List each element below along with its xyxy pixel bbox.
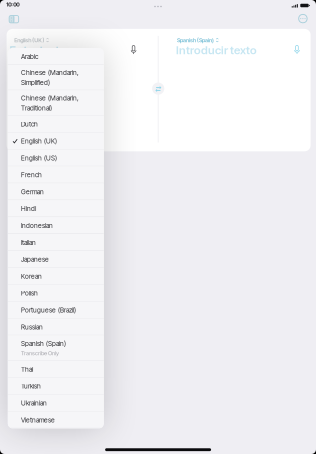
staticText: Polish [21, 289, 38, 297]
staticText: Portuguese (Brazil) [21, 306, 76, 314]
button[interactable]: Vietnamese [8, 411, 104, 428]
staticText: Ukrainian [21, 399, 47, 407]
staticText: 10:00 [6, 1, 19, 8]
staticText: Korean [21, 272, 42, 280]
button[interactable]: Japanese [8, 251, 104, 268]
button[interactable]: German [8, 183, 104, 200]
button[interactable]: Russian [8, 318, 104, 335]
button[interactable]: Spanish (Spain) [8, 335, 104, 361]
staticText: Traditional) [21, 104, 52, 112]
staticText: German [21, 188, 44, 196]
button[interactable]: Thai [8, 361, 104, 378]
staticText: Arabic [21, 52, 38, 60]
staticText: Simplified) [21, 79, 50, 87]
staticText: Spanish (Spain) [21, 340, 66, 348]
button[interactable]: Korean [8, 268, 104, 285]
staticText: Chinese (Mandarin, [21, 94, 79, 102]
staticText: Enter text [10, 43, 60, 57]
staticText: Japanese [21, 255, 49, 263]
button[interactable]: Turkish [8, 378, 104, 395]
button[interactable]: Polish [8, 285, 104, 302]
button[interactable]: French [8, 166, 104, 183]
button[interactable]: Hindi [8, 200, 104, 217]
staticText: Introducir texto [176, 43, 257, 57]
staticText: Turkish [21, 382, 41, 390]
staticText: Thai [21, 365, 33, 373]
staticText: Hindi [21, 205, 36, 213]
button[interactable]: More options [296, 12, 310, 26]
button[interactable]: Chinese (Mandarin, [8, 65, 104, 90]
staticText: Russian [21, 323, 43, 331]
button[interactable]: Chinese (Mandarin, [8, 90, 104, 116]
button[interactable]: Indonesian [8, 217, 104, 234]
button[interactable]: Portuguese (Brazil) [8, 302, 104, 318]
button[interactable]: Dutch [8, 116, 104, 133]
staticText: English (US) [21, 154, 57, 162]
staticText: Italian [21, 238, 36, 246]
staticText: Chinese (Mandarin, [21, 69, 79, 77]
button[interactable]: English (US) [8, 149, 104, 166]
button[interactable]: Italian [8, 234, 104, 251]
button[interactable]: Show sidebar [7, 13, 21, 26]
button[interactable]: English (UK) [8, 133, 104, 149]
staticText: Dutch [21, 120, 38, 128]
button[interactable]: Arabic [8, 48, 104, 65]
button[interactable]: Ukrainian [8, 395, 104, 411]
staticText: Transcribe Only [21, 349, 59, 357]
staticText: Vietnamese [21, 416, 55, 424]
staticText: French [21, 171, 42, 179]
staticText: English (UK) [21, 137, 57, 145]
staticText: Indonesian [21, 221, 53, 230]
staticText: Spanish (Spain) [177, 37, 214, 43]
staticText: English (UK) [14, 37, 44, 43]
